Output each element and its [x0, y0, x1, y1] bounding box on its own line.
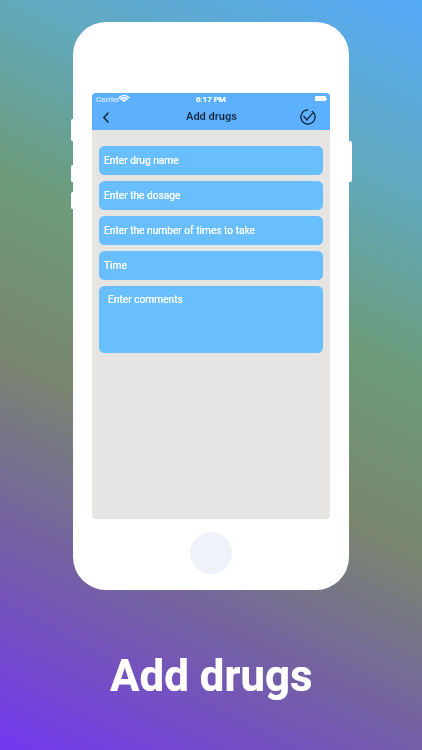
button[interactable]: Time [99, 251, 323, 280]
staticText: Enter the dosage [104, 190, 181, 202]
staticText: Enter drug name [104, 155, 179, 167]
staticText: Carrier [96, 95, 120, 104]
button[interactable]: Home [190, 532, 232, 574]
staticText: Add drugs [186, 110, 237, 123]
button[interactable]: Enter comments [99, 286, 323, 353]
button[interactable]: Enter the dosage [99, 181, 323, 210]
staticText: 6:17 PM [196, 95, 226, 104]
button[interactable]: Enter drug name [99, 146, 323, 175]
button[interactable]: Enter the number of times to take [99, 216, 323, 245]
staticText: Add drugs [110, 650, 313, 701]
button[interactable]: Confirm [296, 105, 320, 129]
staticText: Enter the number of times to take [104, 225, 256, 237]
button[interactable]: Back [95, 106, 117, 128]
staticText: Enter comments [108, 294, 183, 306]
staticText: Time [104, 260, 127, 272]
